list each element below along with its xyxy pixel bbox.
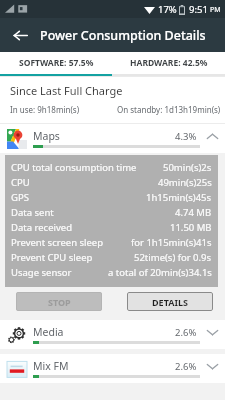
staticText: 17% [158, 3, 177, 16]
staticText: 49min(s)25s [158, 176, 212, 189]
staticText: HARDWARE: 42.5% [130, 57, 208, 69]
staticText: Media [33, 325, 64, 339]
staticText: Data sent [11, 206, 54, 219]
staticText: Maps [33, 129, 60, 143]
staticText: 2.6% [175, 360, 197, 373]
staticText: PM [210, 5, 221, 15]
staticText: SOFTWARE: 57.5% [19, 57, 94, 69]
staticText: 2.6% [175, 326, 197, 339]
staticText: a total of 20min(s)34.1s [108, 266, 212, 279]
button[interactable]: DETAILS [127, 292, 213, 311]
staticText: On standby: 1d13h19min(s) [117, 104, 221, 115]
staticText: Usage sensor [11, 266, 72, 279]
staticText: Data received [11, 221, 72, 234]
staticText: 1h15min(s)45s [146, 191, 212, 204]
staticText: CPU [11, 176, 30, 189]
staticText: DETAILS [152, 296, 188, 308]
button[interactable]: Back [7, 22, 33, 48]
staticText: Since Last Full Charge [10, 83, 123, 98]
staticText: 4.3% [175, 130, 197, 143]
staticText: Power Consumption Details [40, 27, 206, 44]
staticText: for 1h15min(s)41s [131, 236, 212, 249]
button[interactable]: Mix FM [0, 354, 225, 383]
button[interactable]: SOFTWARE: 57.5% [0, 52, 112, 74]
staticText: GPS [11, 191, 29, 204]
staticText: Prevent screen sleep [11, 236, 104, 249]
staticText: 50min(s)2s [163, 161, 212, 174]
staticText: CPU total consumption time [11, 161, 137, 174]
button[interactable]: Maps [0, 124, 225, 153]
staticText: 4.74 MB [175, 206, 212, 219]
staticText: Prevent CPU sleep [11, 251, 93, 264]
staticText: 11.50 MB [170, 221, 212, 234]
button[interactable]: STOP [16, 292, 102, 311]
staticText: STOP [48, 296, 71, 308]
staticText: 9:51 [189, 3, 208, 16]
staticText: Mix FM [33, 359, 69, 373]
button[interactable]: HARDWARE: 42.5% [112, 52, 225, 74]
staticText: In use: 9h18min(s) [10, 104, 80, 115]
staticText: 52time(s) for 0.9s [134, 251, 212, 264]
button[interactable]: Media [0, 320, 225, 349]
